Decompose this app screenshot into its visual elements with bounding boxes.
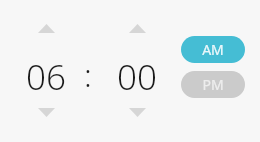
staticText: : [84,53,92,93]
staticText: PM [202,75,224,94]
staticText: 06 [26,53,66,93]
staticText: 00 [117,53,157,93]
button[interactable]: Decrease minute [122,102,152,122]
button[interactable]: AM [181,36,245,63]
button[interactable]: 06 [16,53,76,93]
button[interactable]: 00 [107,53,167,93]
button[interactable]: Decrease hour [31,102,61,122]
button[interactable]: PM [181,71,245,98]
button[interactable]: Increase minute [122,18,152,38]
staticText: AM [202,40,224,59]
button[interactable]: Increase hour [31,18,61,38]
